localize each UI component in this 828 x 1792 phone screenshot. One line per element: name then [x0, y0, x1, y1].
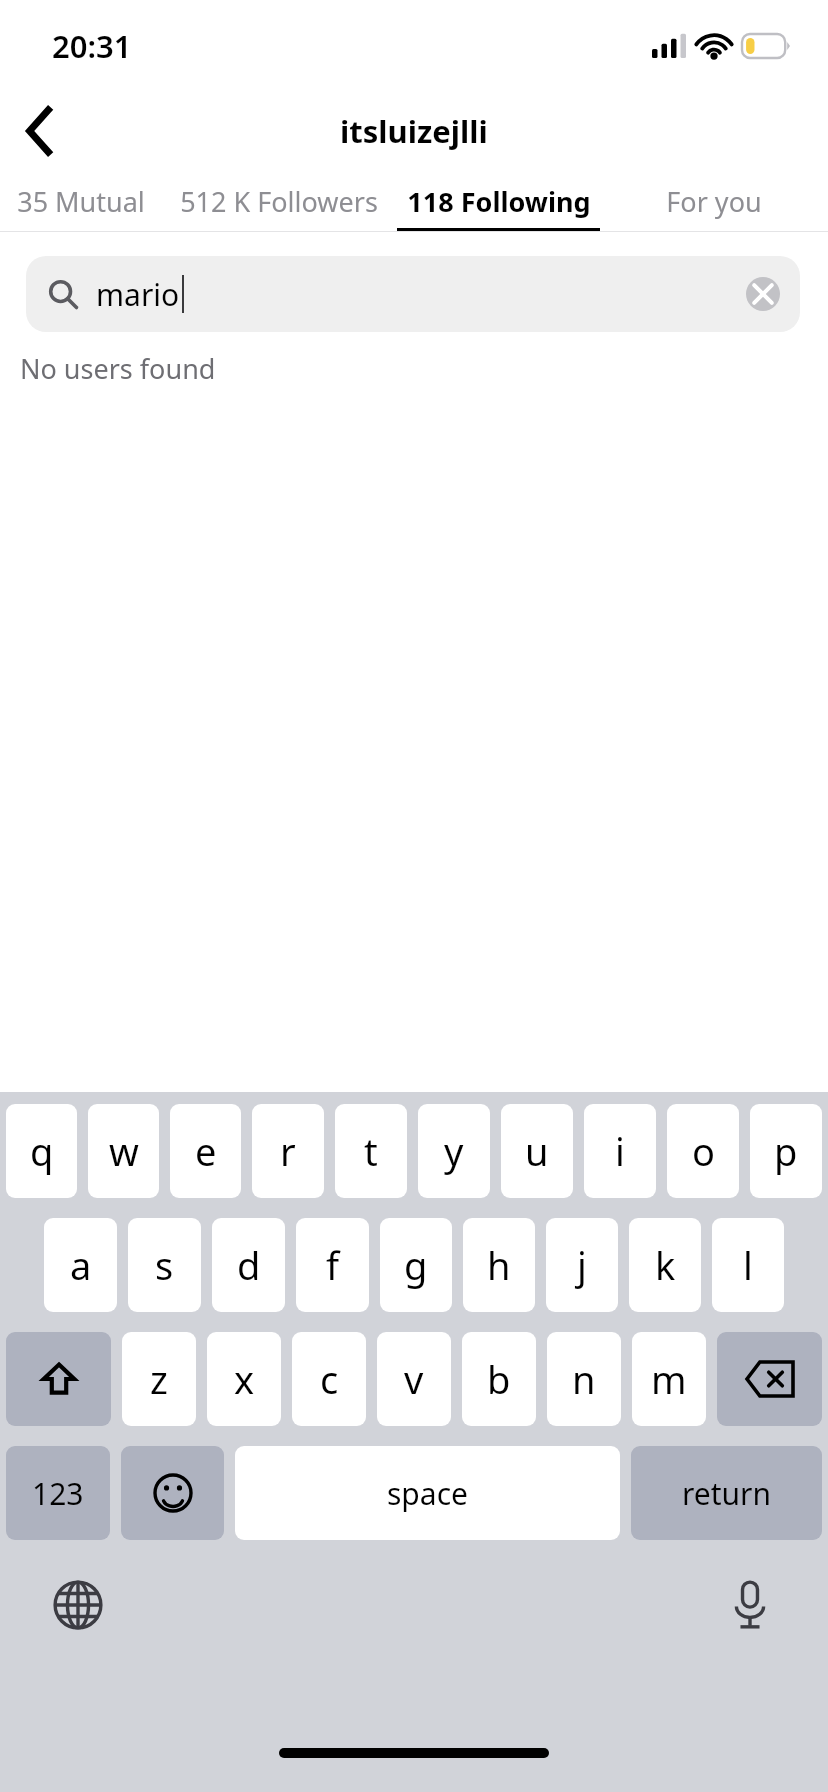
staticText: space — [387, 1473, 468, 1514]
staticText: y — [444, 1125, 464, 1177]
button[interactable]: d — [212, 1218, 285, 1312]
button[interactable]: Dictation — [720, 1575, 780, 1635]
staticText: 35 Mutual — [17, 183, 145, 220]
staticText: 20:31 — [52, 25, 132, 67]
staticText: For you — [666, 183, 762, 220]
button[interactable]: o — [667, 1104, 739, 1198]
button[interactable]: Backspace — [717, 1332, 822, 1426]
staticText: p — [774, 1125, 798, 1177]
button[interactable]: s — [128, 1218, 201, 1312]
button[interactable]: j — [546, 1218, 618, 1312]
button[interactable]: n — [547, 1332, 621, 1426]
staticText: f — [326, 1239, 340, 1291]
button[interactable]: For you — [600, 170, 828, 232]
button[interactable]: z — [122, 1332, 196, 1426]
staticText: d — [237, 1239, 261, 1291]
staticText: q — [30, 1125, 54, 1177]
staticText: itsluizejlli — [340, 110, 488, 152]
button[interactable]: e — [170, 1104, 241, 1198]
staticText: c — [320, 1353, 339, 1405]
staticText: t — [364, 1125, 378, 1177]
button[interactable]: g — [380, 1218, 452, 1312]
button[interactable]: i — [584, 1104, 656, 1198]
button[interactable]: u — [501, 1104, 573, 1198]
button[interactable]: mario — [26, 256, 800, 332]
button[interactable]: Emoji — [121, 1446, 224, 1540]
staticText: h — [487, 1239, 511, 1291]
staticText: m — [651, 1353, 687, 1405]
button[interactable]: c — [292, 1332, 366, 1426]
button[interactable]: h — [463, 1218, 535, 1312]
button[interactable]: return — [631, 1446, 822, 1540]
staticText: 118 Following — [407, 183, 591, 220]
staticText: 123 — [32, 1473, 84, 1514]
staticText: mario — [96, 274, 180, 315]
button[interactable]: m — [632, 1332, 706, 1426]
staticText: u — [525, 1125, 549, 1177]
button[interactable]: Change keyboard language — [48, 1575, 108, 1635]
staticText: r — [280, 1125, 296, 1177]
button[interactable]: 35 Mutual — [0, 170, 161, 232]
staticText: return — [682, 1473, 772, 1514]
staticText: k — [655, 1239, 676, 1291]
button[interactable]: x — [207, 1332, 281, 1426]
button[interactable]: w — [88, 1104, 159, 1198]
button[interactable]: k — [629, 1218, 701, 1312]
staticText: a — [70, 1239, 92, 1291]
staticText: x — [234, 1353, 255, 1405]
staticText: 512 K Followers — [180, 183, 378, 220]
button[interactable]: q — [6, 1104, 77, 1198]
button[interactable]: b — [462, 1332, 536, 1426]
staticText: j — [577, 1239, 587, 1291]
button[interactable]: v — [377, 1332, 451, 1426]
button[interactable]: y — [418, 1104, 490, 1198]
button[interactable]: 118 Following — [397, 170, 600, 232]
button[interactable]: Shift — [6, 1332, 111, 1426]
staticText: b — [487, 1353, 511, 1405]
staticText: s — [155, 1239, 174, 1291]
button[interactable]: a — [44, 1218, 117, 1312]
staticText: z — [150, 1353, 168, 1405]
button[interactable]: t — [335, 1104, 407, 1198]
staticText: v — [404, 1353, 424, 1405]
staticText: n — [572, 1353, 596, 1405]
button[interactable]: f — [296, 1218, 369, 1312]
button[interactable]: Clear text — [746, 277, 780, 311]
button[interactable]: l — [712, 1218, 784, 1312]
button[interactable]: space — [235, 1446, 620, 1540]
staticText: o — [692, 1125, 715, 1177]
staticText: l — [743, 1239, 753, 1291]
button[interactable]: p — [750, 1104, 822, 1198]
button[interactable]: Back — [10, 101, 70, 161]
staticText: e — [195, 1125, 217, 1177]
staticText: g — [404, 1239, 428, 1291]
staticText: w — [109, 1125, 139, 1177]
button[interactable]: r — [252, 1104, 324, 1198]
button[interactable]: 512 K Followers — [161, 170, 397, 232]
staticText: i — [615, 1125, 625, 1177]
staticText: No users found — [20, 350, 216, 387]
button[interactable]: 123 — [6, 1446, 110, 1540]
